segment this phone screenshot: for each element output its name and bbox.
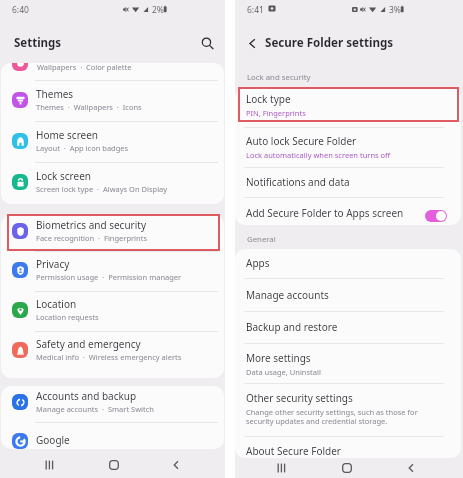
staticText: Manage accounts · Smart Switch <box>36 404 154 414</box>
staticText: Auto lock Secure Folder <box>246 134 357 148</box>
button[interactable]: Lock screen <box>1 166 224 202</box>
staticText: Themes · Wallpapers · Icons <box>36 102 142 112</box>
staticText: Biometrics and security <box>36 218 146 232</box>
button[interactable]: Manage accounts <box>235 284 461 312</box>
button[interactable]: Biometrics and security <box>1 215 224 251</box>
button[interactable]: Lock type <box>235 88 461 124</box>
button[interactable]: Backup and restore <box>235 316 461 344</box>
button[interactable]: Home screen <box>1 125 224 161</box>
staticText: Backup and restore <box>246 320 338 334</box>
button[interactable]: Auto lock Secure Folder <box>235 130 461 166</box>
staticText: Apps <box>246 256 270 270</box>
button[interactable]: Location <box>1 294 224 330</box>
button[interactable]: Home <box>99 455 129 475</box>
button[interactable]: Themes <box>1 84 224 120</box>
button[interactable]: Google <box>1 425 224 449</box>
button[interactable]: About Secure Folder <box>235 440 461 458</box>
staticText: Other security settings <box>246 391 353 405</box>
button[interactable]: Notifications and data <box>235 171 461 199</box>
button[interactable]: Accounts and backup <box>1 386 224 422</box>
staticText: Lock automatically when screen turns off <box>246 150 391 160</box>
staticText: 2% <box>152 4 164 16</box>
button[interactable]: Search <box>196 32 218 54</box>
staticText: Permission usage · Permission manager <box>36 272 182 282</box>
button[interactable]: Recents <box>35 455 65 475</box>
button[interactable]: Recents <box>267 458 297 478</box>
button[interactable]: Back <box>241 32 263 54</box>
button[interactable]: Other security settings <box>235 387 461 423</box>
staticText: Wallpapers · Color palette <box>37 63 132 72</box>
button[interactable] <box>239 88 458 121</box>
staticText: Settings <box>14 35 62 51</box>
staticText: Manage accounts <box>246 288 329 302</box>
staticText: Location <box>36 297 77 311</box>
staticText: 6:40 <box>12 4 29 16</box>
button[interactable]: Privacy <box>1 254 224 290</box>
staticText: 3% <box>389 4 401 16</box>
staticText: Safety and emergency <box>36 337 141 351</box>
staticText: Lock and security <box>247 72 311 83</box>
button[interactable]: More settings <box>235 347 461 383</box>
staticText: Lock screen <box>36 169 92 183</box>
button[interactable] <box>8 215 219 250</box>
button[interactable]: Back <box>161 455 191 475</box>
staticText: More settings <box>246 351 311 365</box>
button[interactable]: Add Secure Folder to Apps screen <box>425 210 447 222</box>
staticText: Lock type <box>246 92 291 106</box>
staticText: Data usage, Uninstall <box>246 367 321 377</box>
staticText: About Secure Folder <box>246 444 341 458</box>
staticText: Secure Folder settings <box>265 35 394 51</box>
staticText: PIN, Fingerprints <box>246 108 306 118</box>
button[interactable]: Safety and emergency <box>1 334 224 370</box>
staticText: Home screen <box>36 128 99 142</box>
staticText: Medical info · Wireless emergency alerts <box>36 352 182 362</box>
staticText: Themes <box>36 87 74 101</box>
staticText: Add Secure Folder to Apps screen <box>246 206 404 220</box>
staticText: Notifications and data <box>246 175 350 189</box>
staticText: Google <box>36 433 70 447</box>
button[interactable]: Home <box>332 458 362 478</box>
staticText: Location requests <box>36 312 99 322</box>
staticText: Privacy <box>36 257 70 271</box>
staticText: Face recognition · Fingerprints <box>36 233 147 243</box>
staticText: 6:41 <box>247 4 264 16</box>
staticText: Change other security settings, such as … <box>246 407 418 427</box>
button[interactable]: Back <box>396 458 426 478</box>
button[interactable]: Add Secure Folder to Apps screen <box>235 202 461 225</box>
staticText: Layout · App icon badges <box>36 143 129 153</box>
staticText: General <box>247 234 276 245</box>
staticText: Screen lock type · Always On Display <box>36 184 168 194</box>
staticText: Accounts and backup <box>36 389 137 403</box>
button[interactable]: Apps <box>235 252 461 280</box>
